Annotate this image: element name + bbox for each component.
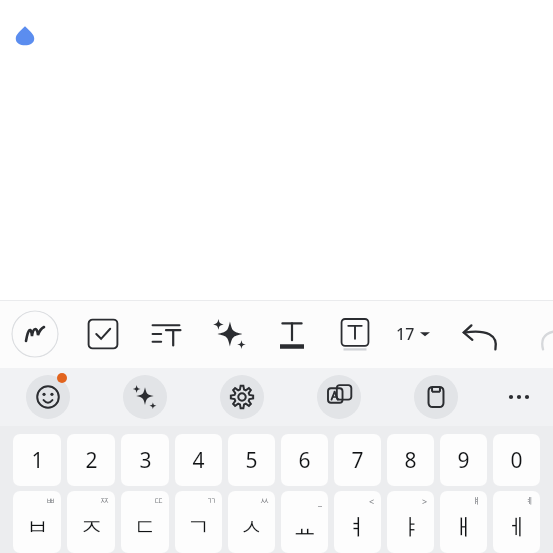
staticText: ㅒ [472,495,481,506]
staticText: 7 [351,446,364,475]
staticText: 4 [192,446,205,475]
button[interactable]: 6 [281,434,328,486]
button[interactable]: 5 [228,434,275,486]
staticText: ㄲ [207,495,216,506]
button[interactable]: ㅆ [228,491,275,553]
button[interactable]: 2 [67,434,115,486]
button[interactable]: Text colour [268,310,316,358]
button[interactable]: Handwriting [11,310,59,358]
staticText: 8 [404,446,417,475]
button[interactable]: Text highlight [331,310,379,358]
button[interactable]: 1 [13,434,61,486]
staticText: ㅖ [525,495,534,506]
button[interactable]: ㄲ [175,491,222,553]
staticText: ㅑ [399,513,422,542]
staticText: ㅛ [293,513,316,542]
button[interactable]: 3 [121,434,169,486]
staticText: 6 [298,446,311,475]
button[interactable]: Paragraph style [142,310,190,358]
staticText: 0 [510,446,523,475]
staticText: 5 [245,446,258,475]
button[interactable]: _ [281,491,328,553]
staticText: ㄸ [154,495,163,506]
staticText: ㅔ [505,513,528,542]
button[interactable]: 0 [493,434,540,486]
button[interactable]: ㅃ [13,491,61,553]
button[interactable]: More options [497,375,541,419]
button[interactable]: < [334,491,381,553]
staticText: ㅆ [260,495,269,506]
staticText: ㅕ [346,513,369,542]
staticText: ㅅ [240,513,263,542]
staticText: ㄷ [134,513,157,542]
button[interactable]: 4 [175,434,222,486]
staticText: > [422,495,428,507]
button[interactable]: 9 [440,434,487,486]
button[interactable]: ㅉ [67,491,115,553]
button[interactable]: ㅖ [493,491,540,553]
staticText: _ [318,495,322,507]
staticText: 2 [85,446,98,475]
button[interactable]: Redo [520,310,553,358]
staticText: ㅃ [46,495,55,506]
staticText: ㅉ [100,495,109,506]
button[interactable]: ㅒ [440,491,487,553]
staticText: < [369,495,375,507]
button[interactable]: 8 [387,434,434,486]
staticText: 9 [457,446,470,475]
button[interactable]: 7 [334,434,381,486]
staticText: ㅈ [80,513,103,542]
button[interactable]: > [387,491,434,553]
button[interactable]: Undo [457,310,505,358]
button[interactable]: Clipboard [414,375,458,419]
button[interactable]: Checklist [79,310,127,358]
staticText: 17 [396,323,415,345]
button[interactable]: ㄸ [121,491,169,553]
button[interactable]: 17 [396,310,450,358]
button[interactable]: Translate [317,375,361,419]
staticText: ㅂ [26,513,49,542]
button[interactable]: AI [123,375,167,419]
staticText: ㄱ [187,513,210,542]
staticText: 3 [139,446,152,475]
button[interactable]: AI assist [205,310,253,358]
staticText: ㅐ [452,513,475,542]
staticText: 1 [31,446,44,475]
button[interactable]: Emoji [26,375,70,419]
button[interactable]: Settings [220,375,264,419]
